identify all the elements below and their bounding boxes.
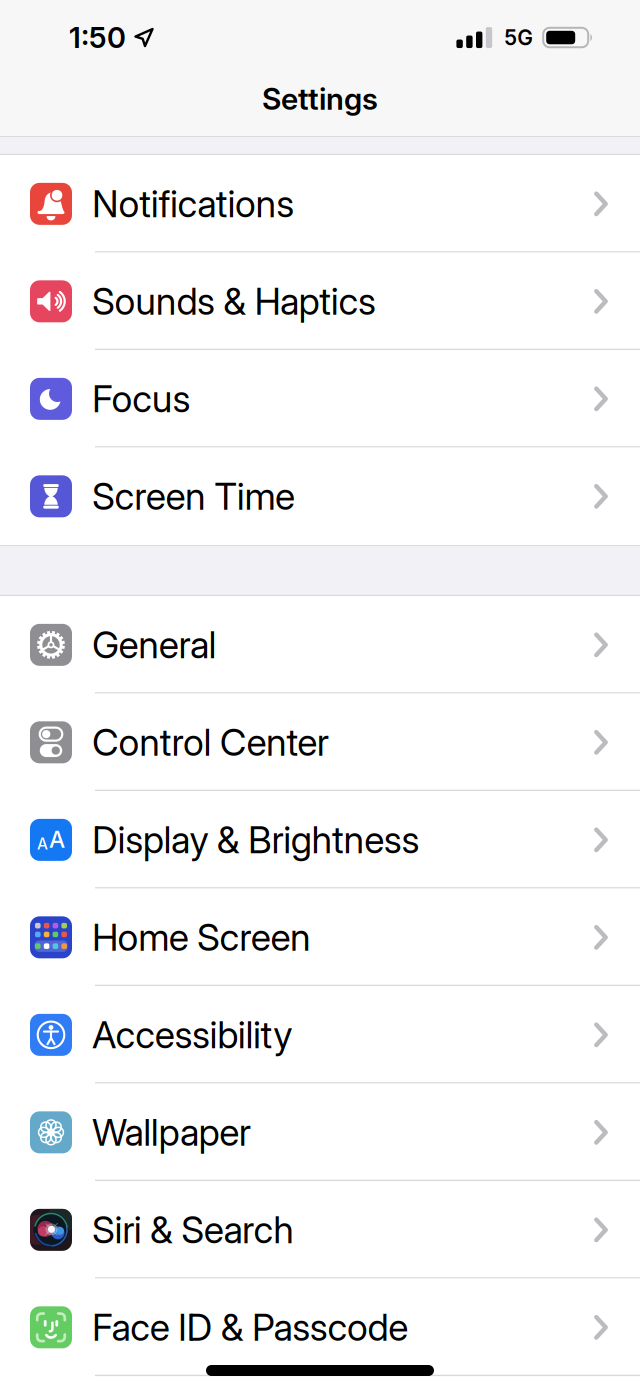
- staticText: 5G: [504, 25, 533, 50]
- button[interactable]: Accessibility: [0, 986, 640, 1084]
- button[interactable]: Focus: [0, 350, 640, 448]
- button[interactable]: Control Center: [0, 694, 640, 791]
- button[interactable]: General: [0, 596, 640, 694]
- button[interactable]: Home Screen: [0, 889, 640, 986]
- staticText: Face ID & Passcode: [92, 1305, 408, 1350]
- staticText: Screen Time: [92, 474, 295, 519]
- staticText: Siri & Search: [92, 1207, 294, 1252]
- button[interactable]: Face ID & Passcode: [0, 1279, 640, 1376]
- staticText: General: [92, 622, 217, 667]
- staticText: Wallpaper: [92, 1110, 251, 1155]
- button[interactable]: Screen Time: [0, 448, 640, 545]
- staticText: Focus: [92, 376, 190, 421]
- button[interactable]: Wallpaper: [0, 1084, 640, 1181]
- staticText: A: [49, 825, 65, 853]
- staticText: 1:50: [69, 20, 126, 55]
- button[interactable]: Sounds & Haptics: [0, 253, 640, 350]
- staticText: Sounds & Haptics: [92, 279, 376, 324]
- button[interactable]: A: [0, 791, 640, 889]
- staticText: Display & Brightness: [92, 817, 419, 862]
- button[interactable]: Siri & Search: [0, 1181, 640, 1279]
- staticText: Control Center: [92, 720, 329, 765]
- button[interactable]: Notifications: [0, 155, 640, 253]
- staticText: Accessibility: [92, 1012, 292, 1057]
- staticText: Home Screen: [92, 915, 311, 960]
- staticText: Settings: [262, 81, 378, 117]
- staticText: Notifications: [92, 181, 294, 226]
- staticText: A: [37, 834, 48, 853]
